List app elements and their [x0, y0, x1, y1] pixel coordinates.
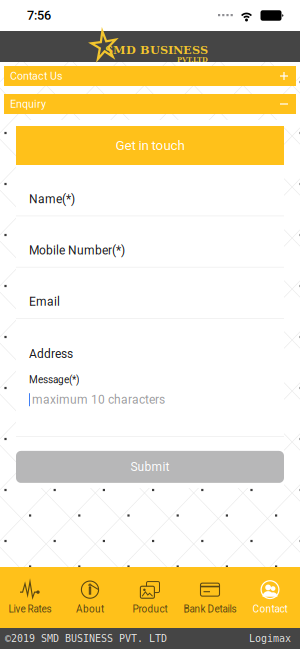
staticText: Name(*): [29, 192, 75, 206]
staticText: 7:56: [27, 8, 51, 23]
staticText: SMD BUSINESS: [105, 43, 208, 57]
staticText: PVT.LTD: [177, 56, 208, 63]
button[interactable]: Bank Details: [180, 567, 240, 628]
staticText: Live Rates: [8, 603, 51, 615]
button[interactable]: Contact Us: [4, 66, 296, 86]
button[interactable]: Get in touch: [16, 126, 284, 165]
staticText: Contact: [252, 603, 287, 615]
button[interactable]: Live Rates: [0, 567, 60, 628]
button[interactable]: Enquiry: [4, 94, 296, 114]
staticText: Bank Details: [183, 603, 236, 615]
button[interactable]: Product: [120, 567, 180, 628]
button[interactable]: Submit: [16, 451, 284, 483]
staticText: Message(*): [29, 374, 79, 386]
staticText: Address: [29, 347, 73, 361]
staticText: Email: [29, 295, 60, 309]
staticText: Mobile Number(*): [29, 243, 125, 257]
staticText: Logimax: [249, 633, 291, 644]
button[interactable]: Contact: [240, 567, 300, 628]
staticText: Get in touch: [115, 138, 184, 153]
staticText: ©2019 SMD BUSINESS PVT. LTD: [5, 633, 167, 644]
button[interactable]: About: [60, 567, 120, 628]
staticText: Submit: [130, 460, 169, 474]
staticText: Product: [132, 603, 167, 615]
staticText: Contact Us: [10, 70, 63, 82]
staticText: maximum 10 characters: [32, 393, 165, 407]
staticText: Enquiry: [10, 98, 46, 110]
staticText: About: [76, 603, 104, 615]
